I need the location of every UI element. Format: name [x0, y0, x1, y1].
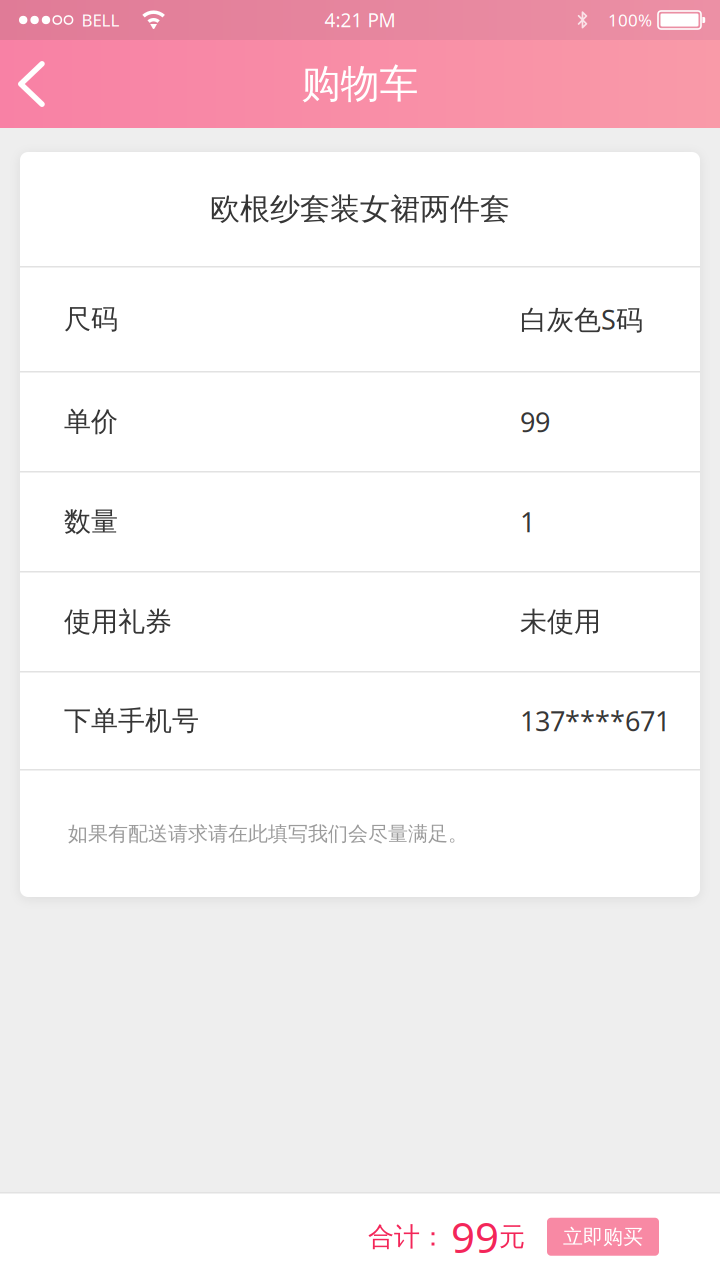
staticText: 购物车 — [301, 59, 418, 108]
staticText: 137****671 — [520, 702, 670, 739]
staticText: 4:21 PM — [324, 7, 395, 33]
button[interactable]: 立即购买 — [547, 1218, 659, 1256]
staticText: 数量 — [64, 505, 118, 539]
staticText: 下单手机号 — [64, 704, 199, 738]
staticText: 白灰色S码 — [520, 301, 643, 338]
staticText: 100% — [608, 8, 652, 32]
staticText: 未使用 — [520, 605, 601, 639]
staticText: 99 — [520, 403, 550, 440]
staticText: 元 — [499, 1220, 525, 1253]
staticText: 欧根纱套装女裙两件套 — [210, 190, 510, 228]
staticText: 使用礼券 — [64, 605, 172, 639]
staticText: BELL — [82, 8, 120, 32]
staticText: 如果有配送请求请在此填写我们会尽量满足。 — [68, 821, 468, 846]
staticText: 尺码 — [64, 302, 118, 336]
staticText: 立即购买 — [563, 1224, 643, 1249]
button[interactable]: Back — [0, 40, 65, 128]
staticText: 合计： — [368, 1220, 446, 1253]
staticText: 99 — [451, 1208, 499, 1265]
staticText: 单价 — [64, 405, 118, 439]
staticText: 1 — [520, 503, 535, 540]
